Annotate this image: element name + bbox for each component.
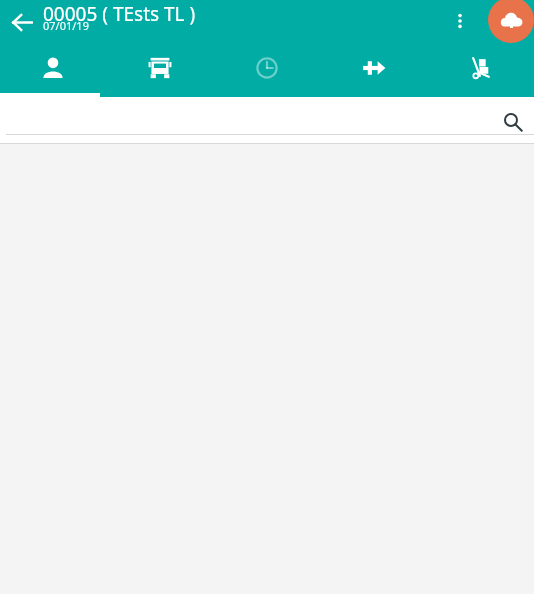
button[interactable]: Back — [5, 5, 39, 39]
button[interactable]: Search — [0, 97, 534, 143]
staticText: 00005 ( TEsts TL ) — [43, 1, 196, 27]
button[interactable]: More options — [443, 4, 476, 37]
button[interactable]: History — [213, 44, 320, 93]
button[interactable]: Person — [0, 44, 106, 93]
button[interactable]: Delivery — [427, 44, 534, 93]
other: Search — [499, 108, 527, 136]
button[interactable]: Vehicle — [106, 44, 213, 93]
button[interactable]: 00005 ( TEsts TL ) — [43, 0, 363, 42]
button[interactable]: Upload — [488, 0, 534, 43]
button[interactable]: Transfer — [320, 44, 427, 93]
staticText: 07/01/19 — [43, 18, 89, 33]
